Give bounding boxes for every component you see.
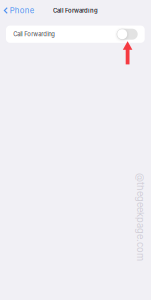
staticText: Call Forwarding [13, 31, 55, 38]
staticText: @thegeekpage.com [96, 211, 151, 223]
staticText: Phone [10, 6, 35, 15]
button[interactable]: Phone [0, 3, 35, 18]
staticText: Call Forwarding [53, 7, 98, 14]
